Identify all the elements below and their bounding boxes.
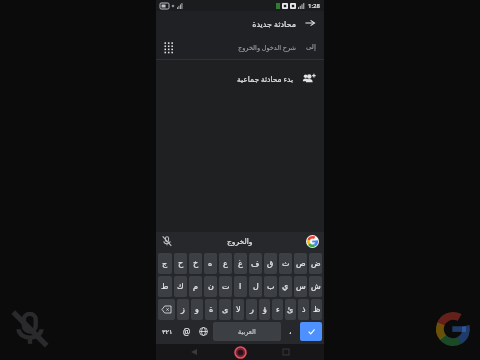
staticText: و <box>195 305 199 314</box>
staticText: 1:28 <box>308 2 320 10</box>
staticText: ى <box>222 305 229 314</box>
button[interactable]: ف <box>249 253 262 274</box>
staticText: ق <box>267 259 274 268</box>
button[interactable]: ي <box>279 276 292 297</box>
button[interactable]: ض <box>309 253 322 274</box>
staticText: @ <box>183 326 191 337</box>
staticText: ض <box>311 259 321 268</box>
staticText: ص <box>296 259 306 268</box>
button[interactable]: لا <box>233 299 244 320</box>
staticText: ه <box>208 259 213 268</box>
button[interactable]: ز <box>177 299 189 320</box>
button[interactable]: ة <box>205 299 217 320</box>
staticText: ي <box>282 282 289 291</box>
button[interactable]: م <box>189 276 202 297</box>
staticText: لا <box>236 305 241 314</box>
staticText: إلى <box>306 43 316 51</box>
button[interactable]: ظ <box>311 299 322 320</box>
staticText: خ <box>193 259 199 268</box>
button[interactable]: محادثة جديدة <box>156 11 324 35</box>
button[interactable]: Back <box>185 345 203 359</box>
button[interactable]: ذ <box>298 299 309 320</box>
staticText: ظ <box>313 305 321 314</box>
staticText: م <box>193 282 198 291</box>
other: Back <box>304 17 316 29</box>
staticText: شرح الدخول والخروج <box>238 43 296 52</box>
staticText: ، <box>289 327 292 336</box>
button[interactable]: غ <box>234 253 247 274</box>
button[interactable]: Dialpad <box>156 35 324 59</box>
button[interactable]: ح <box>174 253 187 274</box>
staticText: ٣٢١ <box>162 328 173 336</box>
button[interactable]: و <box>191 299 203 320</box>
button[interactable]: Recents <box>277 345 295 359</box>
button[interactable]: ط <box>158 276 172 297</box>
button[interactable]: ش <box>309 276 322 297</box>
button[interactable]: Backspace <box>158 299 175 320</box>
button[interactable]: خ <box>189 253 202 274</box>
button[interactable]: ق <box>264 253 277 274</box>
button[interactable]: ع <box>219 253 232 274</box>
button[interactable]: والخروج <box>227 237 253 246</box>
button[interactable]: ى <box>219 299 231 320</box>
staticText: ب <box>267 282 275 291</box>
staticText: ف <box>251 259 260 268</box>
staticText: ط <box>161 282 169 291</box>
staticText: ع <box>223 259 228 268</box>
staticText: ء <box>276 305 280 314</box>
button[interactable]: ن <box>204 276 217 297</box>
button[interactable]: ؤ <box>259 299 270 320</box>
button[interactable]: Google <box>306 235 319 248</box>
button[interactable]: ل <box>249 276 262 297</box>
button[interactable]: Voice input off <box>161 235 173 247</box>
button[interactable]: بدء محادثة جماعية <box>156 66 324 92</box>
staticText: ث <box>282 259 290 268</box>
staticText: ن <box>208 282 214 291</box>
button[interactable]: ج <box>158 253 172 274</box>
button[interactable]: ا <box>234 276 247 297</box>
staticText: ا <box>239 282 242 291</box>
button[interactable]: ك <box>174 276 187 297</box>
button[interactable]: @ <box>179 322 194 341</box>
staticText: ج <box>162 259 168 268</box>
button[interactable]: ٣٢١ <box>158 322 177 341</box>
staticText: بدء محادثة جماعية <box>237 74 294 84</box>
button[interactable]: Enter <box>300 322 322 341</box>
button[interactable]: ئ <box>285 299 296 320</box>
staticText: ة <box>209 305 214 314</box>
staticText: محادثة جديدة <box>252 18 296 29</box>
button[interactable]: ، <box>283 322 298 341</box>
staticText: غ <box>238 259 243 268</box>
staticText: ك <box>177 282 184 291</box>
staticText: ح <box>178 259 184 268</box>
button[interactable]: ت <box>219 276 232 297</box>
other: Dialpad <box>164 42 175 53</box>
button[interactable]: ه <box>204 253 217 274</box>
button[interactable]: Change language <box>196 322 211 341</box>
button[interactable]: س <box>294 276 307 297</box>
button[interactable]: العربية <box>213 322 281 341</box>
button[interactable]: ب <box>264 276 277 297</box>
staticText: ئ <box>287 305 294 314</box>
staticText: ش <box>311 282 321 291</box>
staticText: ل <box>253 282 259 291</box>
button[interactable]: Home <box>232 344 248 360</box>
staticText: ؤ <box>263 305 267 314</box>
staticText: العربية <box>238 328 256 336</box>
staticText: ت <box>222 282 230 291</box>
button[interactable]: ص <box>294 253 307 274</box>
staticText: س <box>296 282 306 291</box>
button[interactable]: ث <box>279 253 292 274</box>
staticText: ذ <box>302 305 306 314</box>
button[interactable]: ء <box>272 299 283 320</box>
staticText: ز <box>181 305 185 314</box>
button[interactable]: ر <box>246 299 257 320</box>
staticText: ر <box>250 305 254 314</box>
